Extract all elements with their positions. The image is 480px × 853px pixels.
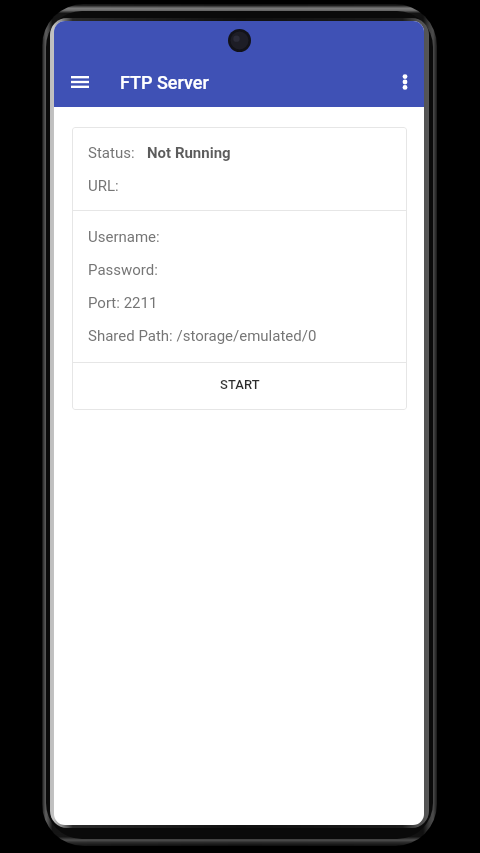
staticText: Shared Path: /storage/emulated/0 xyxy=(88,327,317,345)
button[interactable]: More options xyxy=(385,58,424,106)
button[interactable]: START xyxy=(72,363,407,410)
staticText: Username: xyxy=(88,228,160,246)
staticText: Port: 2211 xyxy=(88,294,158,312)
button[interactable]: Open navigation menu xyxy=(55,58,104,106)
staticText: Not Running xyxy=(147,144,231,162)
staticText: FTP Server xyxy=(120,72,209,93)
staticText: START xyxy=(220,377,260,392)
staticText: Password: xyxy=(88,261,158,279)
staticText: Status: xyxy=(88,144,135,162)
staticText: URL: xyxy=(88,177,119,195)
